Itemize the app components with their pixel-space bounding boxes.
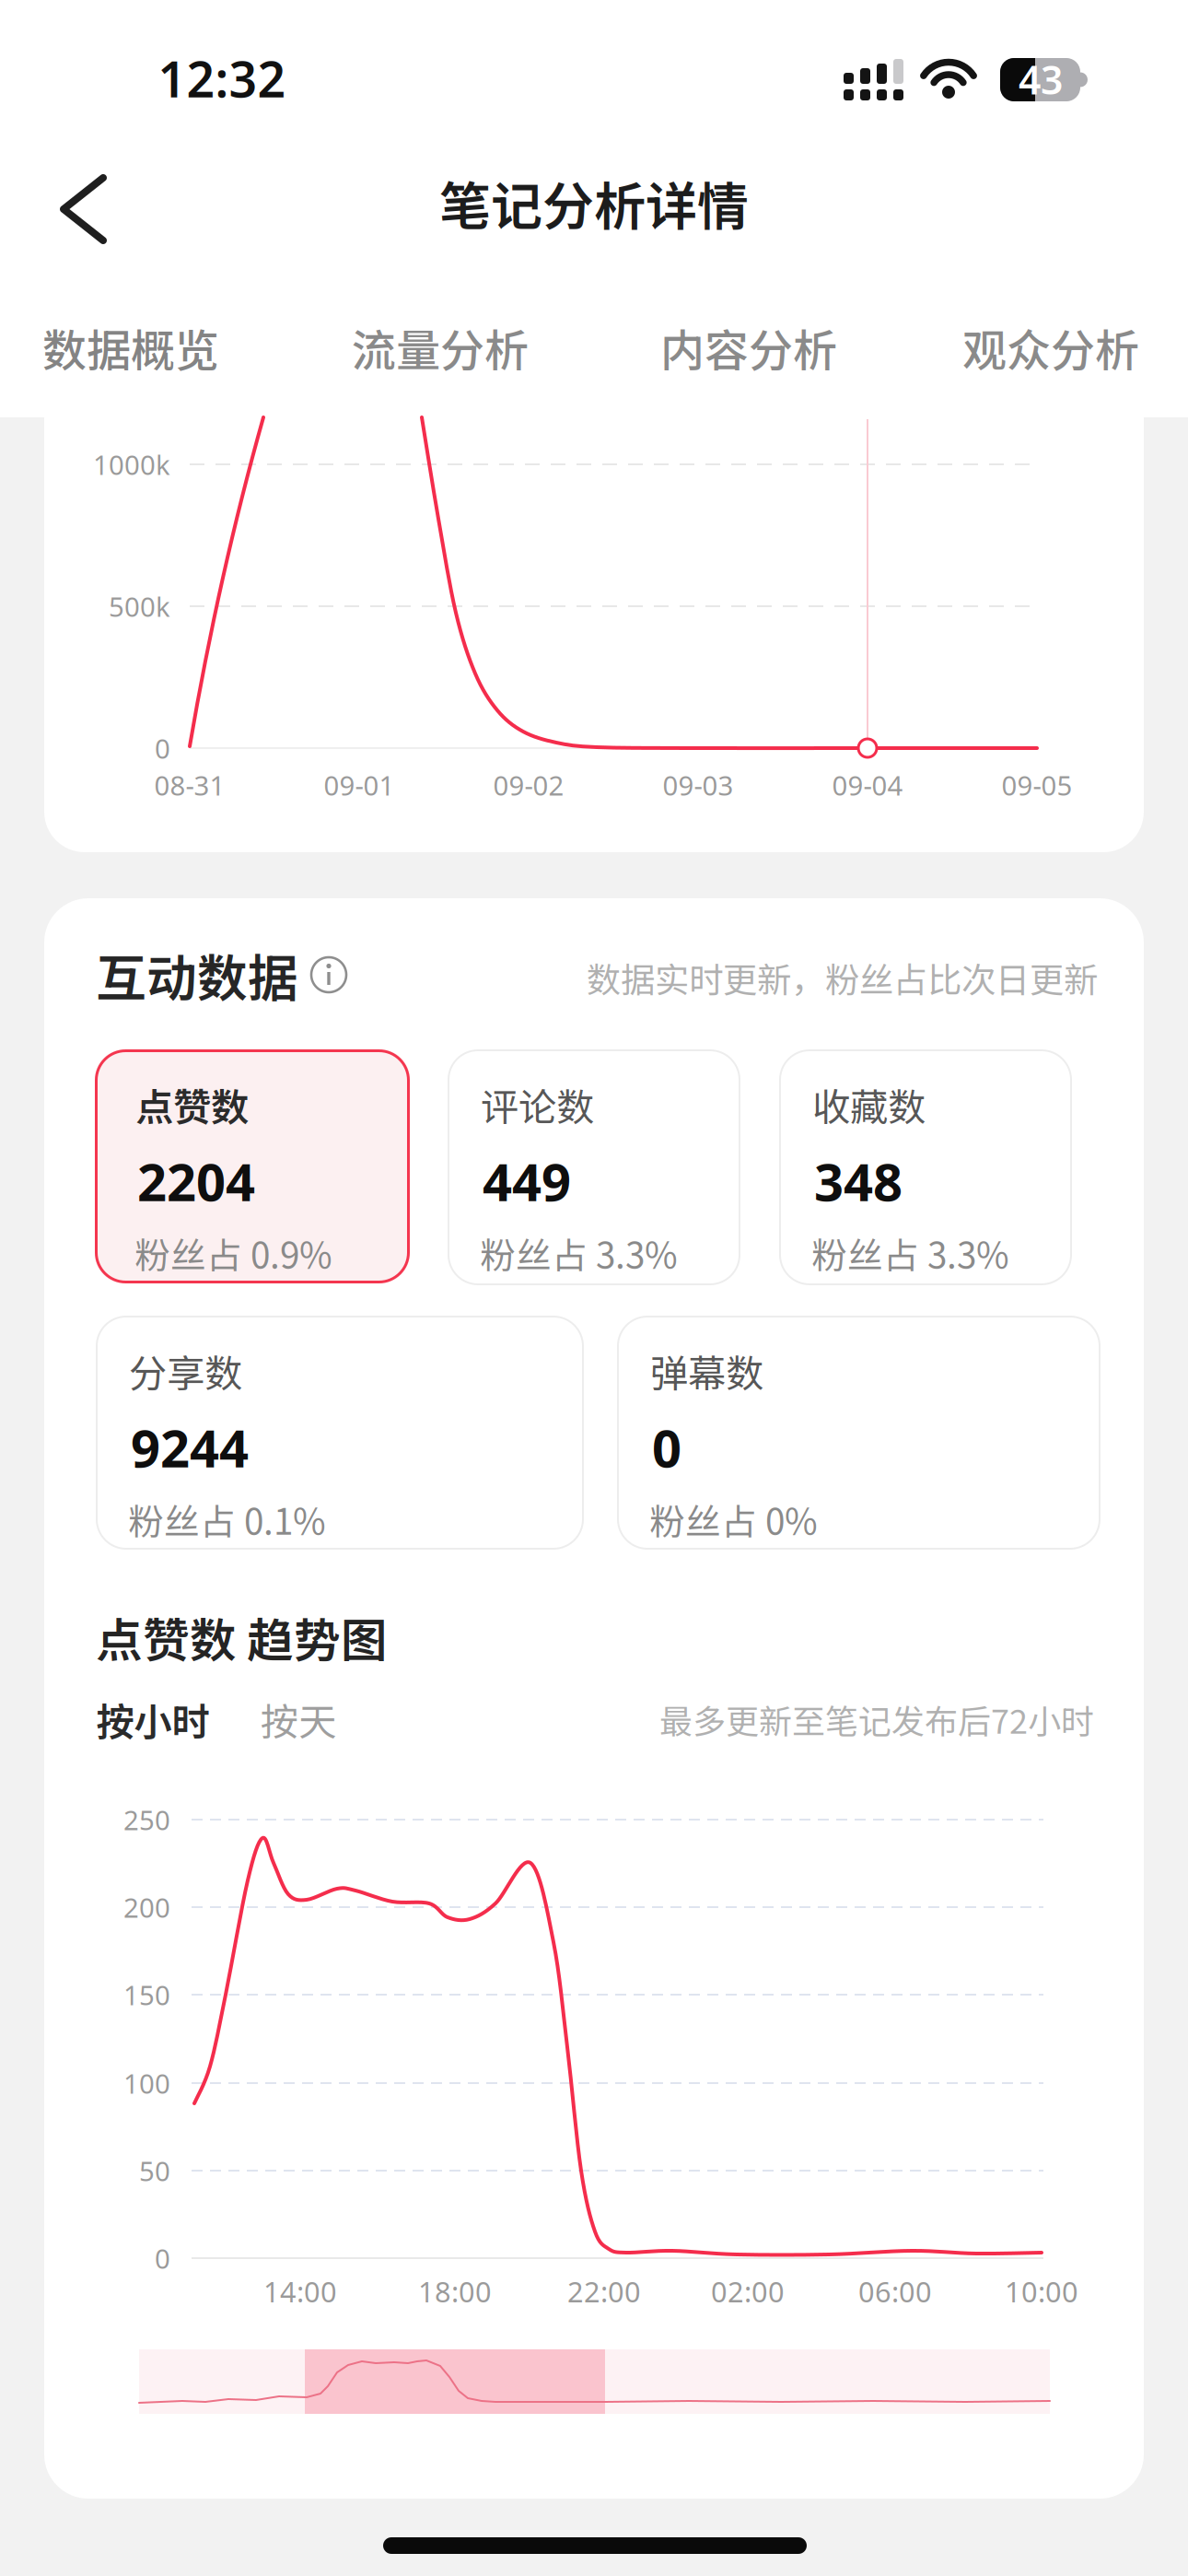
staticText: 点赞数: [135, 1077, 249, 1132]
staticText: 09-02: [493, 767, 564, 803]
button[interactable]: 收藏数: [779, 1049, 1072, 1285]
staticText: 12:32: [158, 46, 286, 111]
staticText: 内容分析: [660, 315, 837, 379]
button[interactable]: 点赞数: [95, 1049, 410, 1283]
staticText: 500k: [109, 588, 170, 624]
staticText: 互动数据: [96, 938, 298, 1011]
staticText: 09-03: [663, 767, 734, 803]
staticText: 50: [139, 2153, 170, 2189]
staticText: 348: [814, 1147, 903, 1215]
staticText: 流量分析: [352, 315, 529, 379]
staticText: 粉丝占 3.3%: [480, 1227, 678, 1279]
staticText: 点赞数 趋势图: [96, 1603, 388, 1671]
staticText: 08-31: [154, 767, 225, 803]
button[interactable]: 分享数: [96, 1316, 584, 1550]
staticText: 100: [123, 2065, 170, 2101]
staticText: 最多更新至笔记发布后72小时: [659, 1695, 1094, 1743]
staticText: 09-01: [324, 767, 395, 803]
staticText: 09-05: [1002, 767, 1072, 803]
staticText: 收藏数: [812, 1077, 926, 1132]
staticText: 粉丝占 0%: [649, 1493, 818, 1545]
button[interactable]: 评论数: [448, 1049, 740, 1285]
staticText: 粉丝占 0.9%: [134, 1227, 332, 1279]
button[interactable]: 数据概览: [42, 315, 219, 379]
button[interactable]: 内容分析: [660, 315, 837, 379]
staticText: 弹幕数: [650, 1343, 763, 1399]
staticText: 449: [483, 1147, 571, 1215]
button[interactable]: 流量分析: [352, 315, 529, 379]
staticText: 分享数: [129, 1343, 242, 1399]
staticText: 200: [123, 1889, 170, 1925]
staticText: 2204: [137, 1147, 255, 1215]
staticText: 10:00: [1005, 2273, 1078, 2310]
staticText: 9244: [131, 1413, 249, 1482]
staticText: 06:00: [858, 2273, 932, 2310]
staticText: 数据实时更新，粉丝占比次日更新: [587, 953, 1098, 1002]
staticText: 粉丝占 0.1%: [128, 1493, 326, 1545]
staticText: 02:00: [711, 2273, 785, 2310]
staticText: 按天: [261, 1692, 336, 1747]
button[interactable]: 互动数据说明: [309, 954, 349, 995]
staticText: 1000k: [93, 446, 170, 482]
staticText: 150: [123, 1977, 170, 2013]
staticText: 22:00: [567, 2273, 641, 2310]
staticText: 43: [1019, 53, 1063, 105]
staticText: 笔记分析详情: [439, 165, 749, 240]
staticText: 250: [123, 1802, 170, 1838]
staticText: 按小时: [96, 1692, 210, 1747]
button[interactable]: 按小时: [96, 1692, 210, 1747]
button[interactable]: 弹幕数: [617, 1316, 1101, 1550]
staticText: 观众分析: [962, 315, 1139, 379]
staticText: 粉丝占 3.3%: [811, 1227, 1009, 1279]
button[interactable]: 按天: [261, 1692, 336, 1747]
button[interactable]: 选择时间范围: [305, 2349, 605, 2414]
staticText: 18:00: [418, 2273, 492, 2310]
staticText: 0: [155, 2240, 170, 2276]
staticText: 评论数: [481, 1077, 594, 1132]
button[interactable]: Back: [55, 170, 114, 248]
staticText: 09-04: [832, 767, 903, 803]
staticText: 0: [652, 1413, 681, 1482]
staticText: 14:00: [263, 2273, 337, 2310]
staticText: 0: [155, 730, 170, 766]
button[interactable]: 观众分析: [962, 315, 1139, 379]
staticText: 数据概览: [42, 315, 219, 379]
